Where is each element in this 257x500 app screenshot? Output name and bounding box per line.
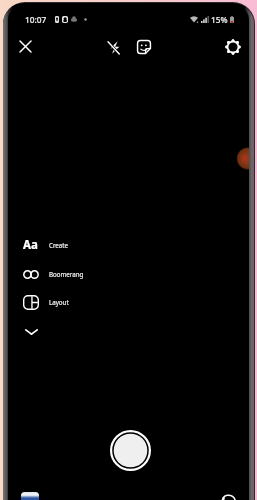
button[interactable]: Aa <box>18 234 118 256</box>
button[interactable]: Close <box>17 38 34 55</box>
button[interactable]: Layout <box>18 291 118 313</box>
staticText: 15% <box>211 14 228 25</box>
button[interactable]: Take photo <box>109 429 152 472</box>
button[interactable]: Switch camera <box>218 490 244 500</box>
staticText: Aa <box>23 237 38 253</box>
button[interactable]: Boomerang <box>18 263 118 285</box>
staticText: 10:07 <box>25 14 47 25</box>
button[interactable]: Gallery <box>21 492 39 500</box>
button[interactable]: Stickers <box>135 38 153 56</box>
button[interactable]: Flash off <box>105 38 123 56</box>
button[interactable]: More options <box>19 321 44 343</box>
button[interactable]: Settings <box>224 37 242 56</box>
staticText: Create <box>49 241 69 249</box>
staticText: Layout <box>49 298 69 306</box>
staticText: Boomerang <box>49 270 84 278</box>
